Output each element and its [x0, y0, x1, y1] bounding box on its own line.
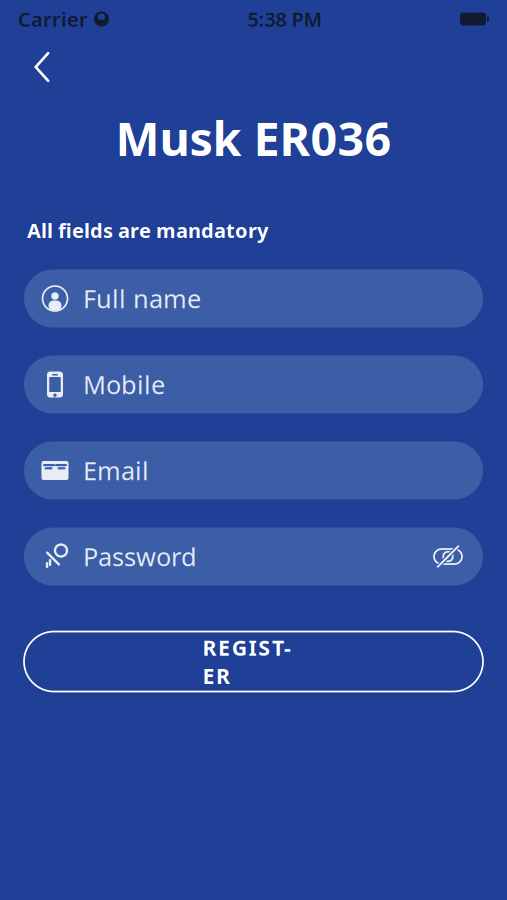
- staticText: Mobile: [83, 368, 165, 401]
- staticText: Email: [83, 454, 149, 487]
- staticText: Musk ER036: [115, 107, 391, 169]
- button[interactable]: Password: [24, 527, 483, 585]
- staticText: All fields are mandatory: [27, 217, 268, 244]
- staticText: REGISTER: [202, 633, 305, 690]
- button[interactable]: Back: [18, 43, 66, 91]
- button[interactable]: Show password: [432, 540, 464, 572]
- button[interactable]: Email: [24, 441, 483, 499]
- staticText: 5:38 PM: [247, 6, 322, 32]
- staticText: Password: [83, 540, 197, 573]
- button[interactable]: REGISTER: [24, 631, 483, 691]
- staticText: Full name: [83, 282, 201, 315]
- staticText: Carrier: [18, 6, 88, 32]
- button[interactable]: Mobile: [24, 355, 483, 413]
- button[interactable]: Full name: [24, 269, 483, 327]
